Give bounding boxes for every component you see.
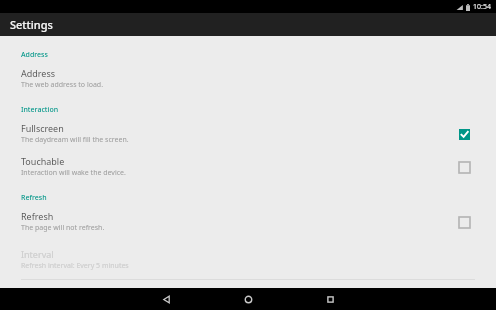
- staticText: Fullscreen: [21, 122, 64, 134]
- button[interactable]: Refresh: [0, 205, 496, 238]
- button[interactable]: Address: [0, 62, 496, 95]
- button[interactable]: Enabled: [456, 126, 472, 142]
- button[interactable]: Home: [226, 288, 270, 310]
- button[interactable]: Touchable: [0, 150, 496, 183]
- staticText: Settings: [10, 17, 53, 32]
- staticText: Interaction will wake the device.: [21, 168, 126, 178]
- staticText: The page will not refresh.: [21, 223, 105, 233]
- button[interactable]: Recent apps: [308, 288, 352, 310]
- button[interactable]: Fullscreen: [0, 117, 496, 150]
- staticText: The daydream will fill the screen.: [21, 135, 129, 145]
- button[interactable]: Back: [144, 288, 188, 310]
- staticText: Refresh interval: Every 5 minutes: [21, 261, 129, 271]
- staticText: Address: [21, 67, 56, 79]
- staticText: Refresh: [21, 193, 47, 203]
- staticText: The web address to load.: [21, 80, 104, 90]
- button[interactable]: Disabled: [456, 159, 472, 175]
- staticText: Interaction: [21, 105, 59, 115]
- staticText: 10:54: [473, 2, 491, 12]
- staticText: Address: [21, 50, 48, 60]
- button[interactable]: Disabled: [456, 214, 472, 230]
- staticText: Interval: [21, 248, 54, 260]
- staticText: Touchable: [21, 155, 65, 167]
- staticText: Refresh: [21, 210, 54, 222]
- button[interactable]: Interval: [0, 243, 496, 276]
